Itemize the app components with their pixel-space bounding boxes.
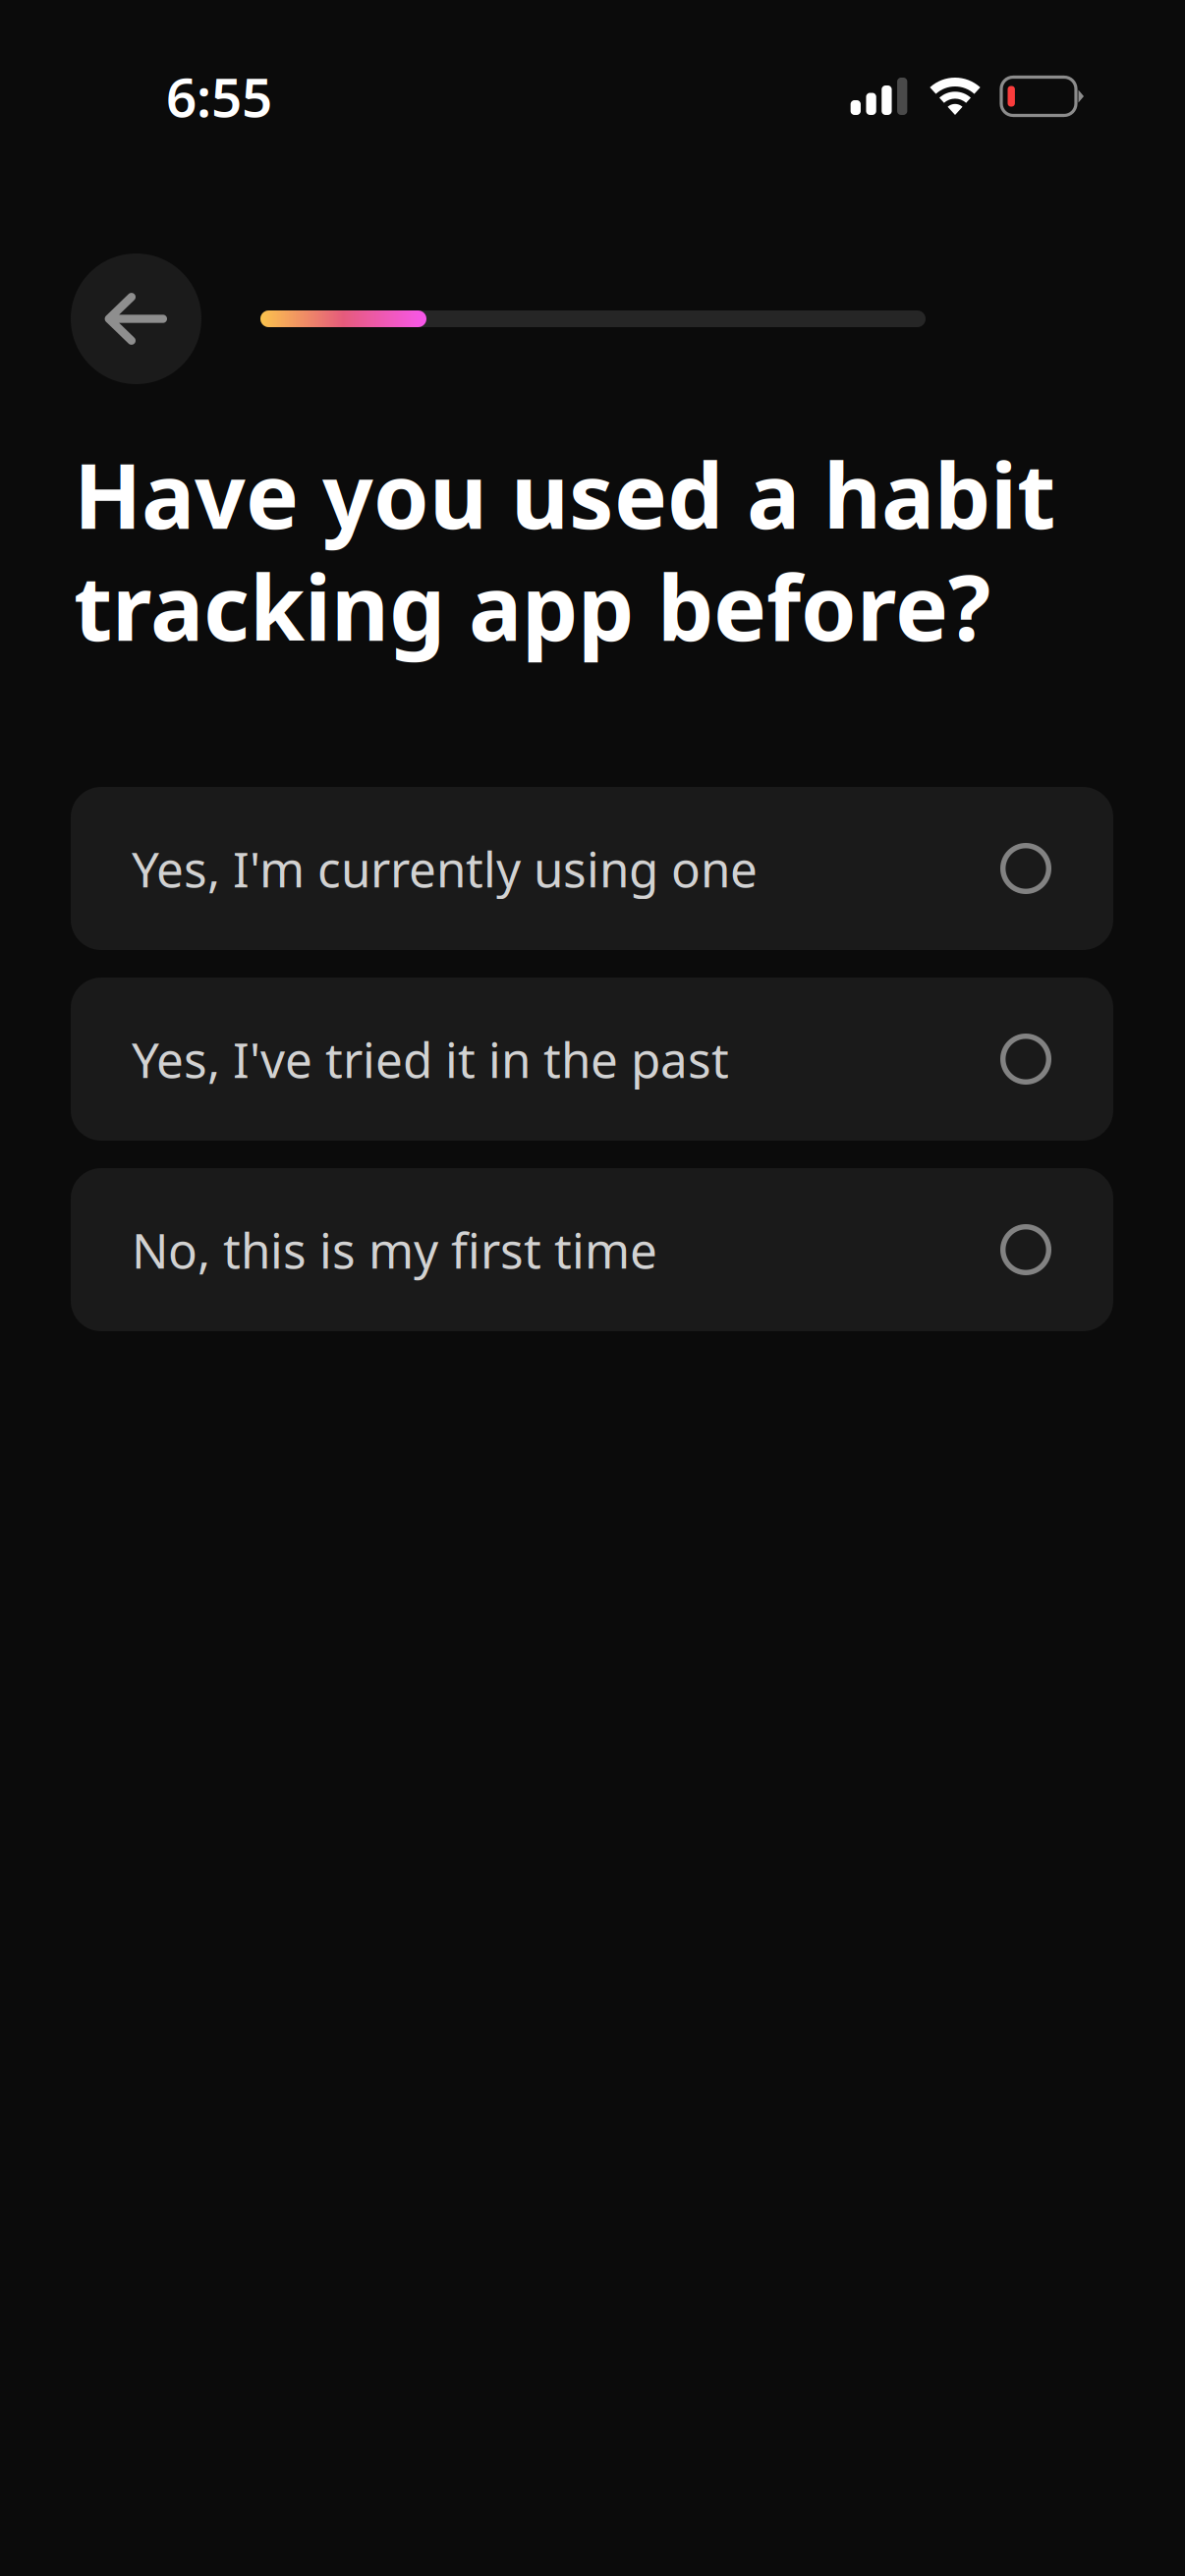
staticText: Have you used a habit bbox=[74, 435, 1055, 553]
button[interactable]: No, this is my first time bbox=[71, 1168, 1113, 1331]
staticText: Yes, I'm currently using one bbox=[132, 836, 758, 901]
button[interactable]: Yes, I'm currently using one bbox=[71, 787, 1113, 950]
button[interactable]: Back bbox=[71, 253, 201, 384]
staticText: No, this is my first time bbox=[132, 1217, 657, 1282]
staticText: Yes, I've tried it in the past bbox=[132, 1027, 729, 1091]
staticText: tracking app before? bbox=[74, 547, 990, 665]
button[interactable]: Yes, I've tried it in the past bbox=[71, 978, 1113, 1141]
staticText: 6:55 bbox=[166, 61, 272, 132]
